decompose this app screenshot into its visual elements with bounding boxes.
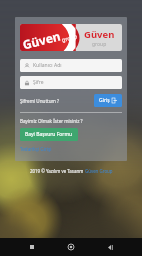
button[interactable]: Back [103,240,117,254]
staticText: Giriş [99,97,110,104]
staticText: Kullanıcı Adı [33,62,62,69]
staticText: 2019 © Yazılım ve Tasarım [30,168,85,174]
button[interactable]: Giriş [94,94,122,107]
button[interactable]: Güven [20,24,122,51]
staticText: group [92,41,107,48]
staticText: Şifremi Unuttum ? [20,98,60,104]
button[interactable]: Recents [25,240,39,254]
staticText: Bayi Başvuru Formu [25,131,73,138]
button[interactable]: Güven Group [85,168,113,174]
staticText: group [61,32,78,43]
staticText: Şifre [33,79,44,86]
staticText: Güven Group [85,168,113,174]
staticText: Güven [21,27,63,51]
staticText: Güven [84,28,115,41]
button[interactable]: Home [64,240,78,254]
button[interactable]: Kullanıcı Adı [20,59,122,72]
staticText: Tedarikçi Girişi [20,146,52,152]
button[interactable]: Bayi Başvuru Formu [20,128,78,141]
button[interactable]: Şifremi Unuttum ? [20,96,60,106]
button[interactable]: Şifre [20,76,122,89]
button[interactable]: Tedarikçi Girişi [20,146,52,152]
staticText: Bayimiz Olmak İster misiniz ? [20,118,83,124]
